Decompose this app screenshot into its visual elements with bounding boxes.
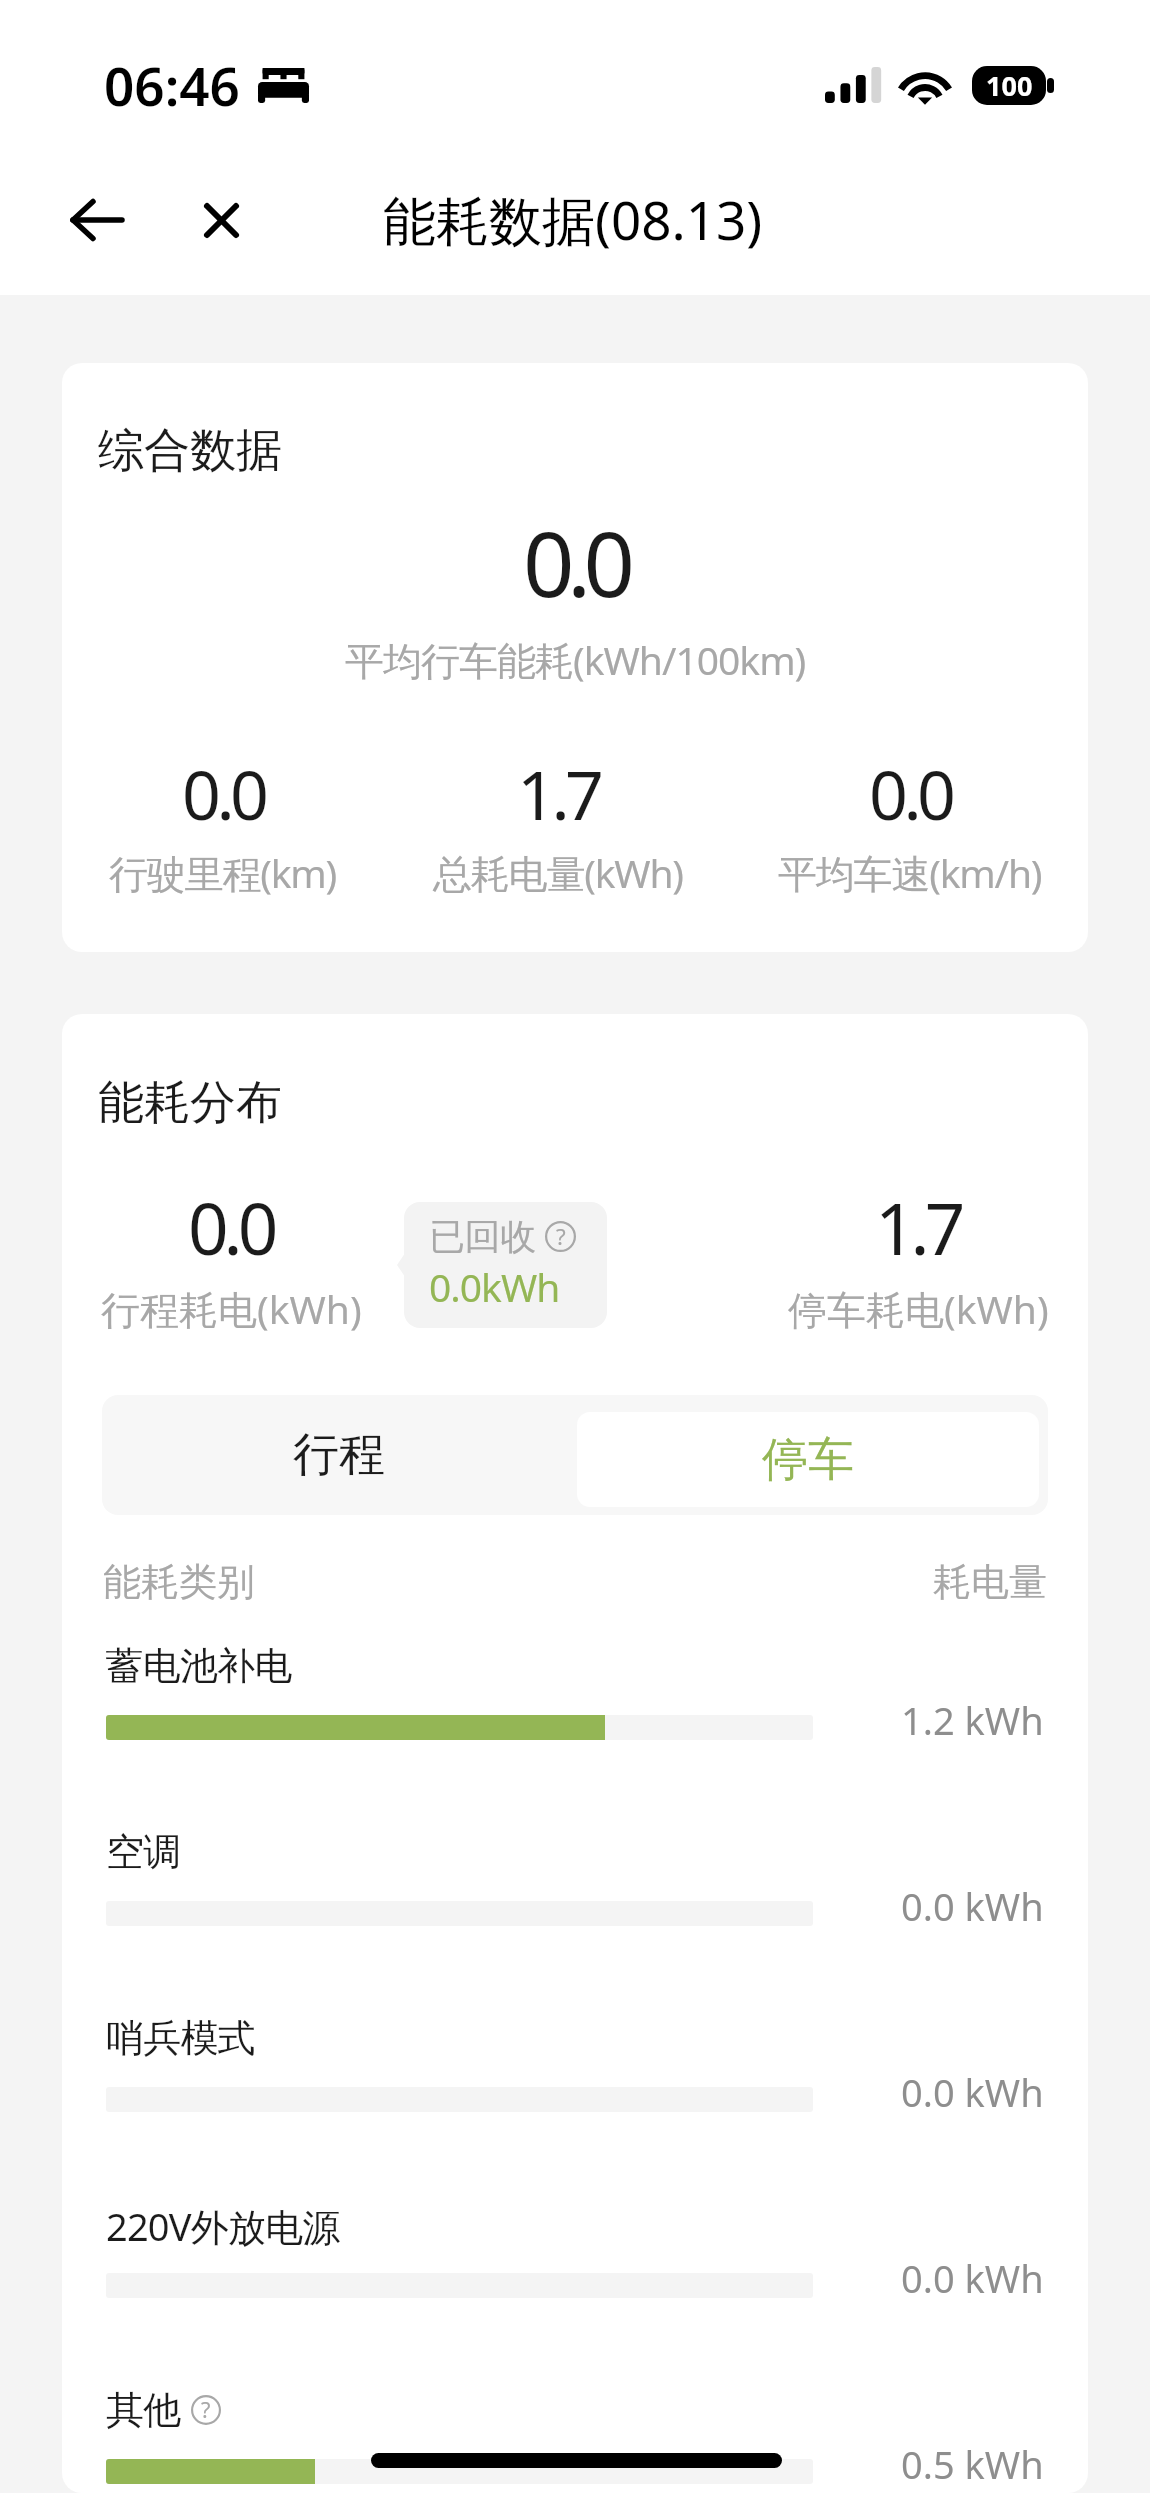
staticText: 能耗类别	[103, 1558, 255, 1606]
button[interactable]: 停车	[577, 1412, 1039, 1507]
staticText: ?	[556, 1221, 566, 1251]
staticText: 0.0 kWh	[901, 2066, 1044, 2118]
staticText: 综合数据	[98, 422, 282, 480]
staticText: 行程耗电(kWh)	[101, 1282, 362, 1331]
button[interactable]: Close	[166, 155, 276, 285]
staticText: 0.0	[182, 747, 265, 840]
staticText: 1.7	[517, 747, 600, 840]
staticText: 0.0	[869, 747, 952, 840]
button[interactable]: 行程	[102, 1395, 575, 1515]
staticText: 总耗电量(kWh)	[433, 846, 683, 899]
staticText: 哨兵模式	[106, 2014, 255, 2062]
staticText: 停车	[762, 1431, 854, 1489]
staticText: 平均行车能耗(kWh/100km)	[345, 633, 806, 686]
staticText: 0.0 kWh	[901, 1880, 1044, 1932]
staticText: 停车耗电(kWh)	[788, 1282, 1049, 1331]
staticText: 能耗分布	[98, 1074, 282, 1132]
staticText: 0.5 kWh	[901, 2438, 1044, 2490]
staticText: 空调	[106, 1828, 181, 1876]
staticText: 已回收	[429, 1214, 536, 1259]
staticText: 能耗数据(08.13)	[383, 183, 763, 255]
button[interactable]: Back	[32, 155, 162, 285]
staticText: 220V外放电源	[106, 2200, 340, 2252]
staticText: 行驶里程(km)	[109, 846, 337, 899]
button[interactable]: About recovered energy	[545, 1221, 576, 1252]
staticText: 06:46	[104, 49, 240, 121]
staticText: 0.0	[523, 501, 628, 624]
staticText: 100	[986, 67, 1033, 104]
staticText: 1.2 kWh	[901, 1694, 1044, 1746]
staticText: 蓄电池补电	[106, 1642, 292, 1690]
button[interactable]: About other consumption	[191, 2395, 221, 2425]
staticText: 其他	[106, 2386, 181, 2434]
staticText: 行程	[293, 1426, 385, 1484]
staticText: 1.7	[875, 1179, 961, 1276]
staticText: 耗电量	[933, 1558, 1047, 1606]
staticText: 0.0	[188, 1179, 274, 1276]
staticText: 0.0 kWh	[901, 2252, 1044, 2304]
staticText: 0.0kWh	[429, 1260, 560, 1313]
staticText: ?	[201, 2395, 211, 2424]
staticText: 平均车速(km/h)	[778, 846, 1042, 899]
